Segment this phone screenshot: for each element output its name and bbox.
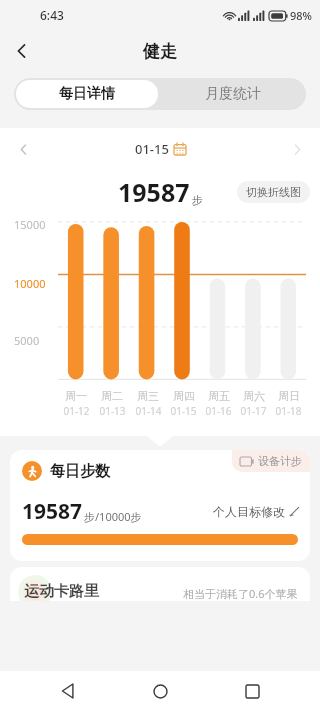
staticText: 设备计步	[258, 454, 302, 468]
staticText: 健走	[143, 41, 177, 62]
staticText: 周四	[173, 389, 195, 403]
staticText: 98%	[290, 8, 312, 23]
staticText: 01-13	[99, 404, 126, 418]
staticText: 01-14	[135, 404, 162, 418]
button[interactable]: Next day	[280, 132, 314, 166]
staticText: 6:43	[40, 7, 64, 23]
staticText: 周三	[137, 389, 159, 403]
button[interactable]: Recents	[228, 671, 276, 711]
staticText: 运动卡路里	[24, 582, 99, 601]
button[interactable]: 每日详情	[16, 80, 158, 108]
staticText: 15000	[14, 217, 58, 232]
staticText: 周五	[208, 389, 230, 403]
staticText: 01-12	[63, 404, 90, 418]
button[interactable]: Back	[44, 671, 92, 711]
button[interactable]: 运动卡路里	[10, 567, 310, 601]
button[interactable]: Back	[0, 30, 44, 72]
staticText: 月度统计	[205, 85, 261, 103]
staticText: 相当于消耗了0.6个苹果	[183, 586, 298, 601]
button[interactable]: 切换折线图	[237, 181, 310, 203]
staticText: 每日详情	[59, 85, 115, 103]
button[interactable]: 个人目标修改	[213, 504, 300, 519]
staticText: 01-15	[135, 140, 169, 158]
staticText: 01-15	[170, 404, 197, 418]
staticText: 19587	[22, 497, 83, 526]
staticText: 01-17	[240, 404, 267, 418]
staticText: 周日	[278, 389, 300, 403]
staticText: 周六	[243, 389, 265, 403]
button[interactable]: Home	[136, 671, 184, 711]
staticText: 切换折线图	[246, 185, 301, 199]
button[interactable]: 01-15	[135, 140, 186, 158]
staticText: 10000	[14, 276, 58, 291]
staticText: 19587	[118, 175, 190, 209]
staticText: 个人目标修改	[213, 504, 285, 519]
button[interactable]: Previous day	[6, 132, 40, 166]
button[interactable]: 每日步数	[10, 450, 310, 561]
staticText: 步/10000步	[84, 509, 142, 524]
button[interactable]: 月度统计	[160, 78, 306, 110]
staticText: 周二	[101, 389, 123, 403]
staticText: 步	[192, 193, 203, 207]
staticText: 5000	[14, 333, 58, 348]
staticText: 01-18	[275, 404, 302, 418]
staticText: 周一	[65, 389, 87, 403]
staticText: 每日步数	[50, 462, 110, 481]
staticText: 01-16	[205, 404, 232, 418]
